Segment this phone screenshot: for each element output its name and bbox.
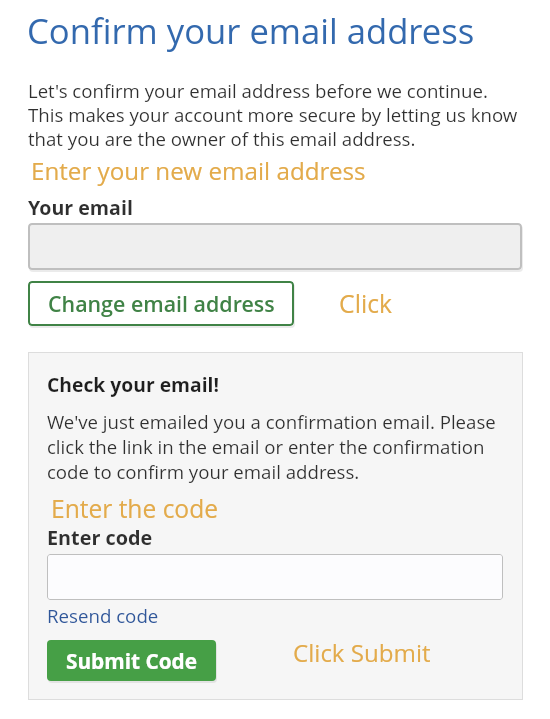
- button[interactable]: Resend code: [47, 603, 159, 628]
- staticText: Change email address: [48, 289, 275, 318]
- staticText: Your email: [28, 194, 133, 221]
- staticText: We've just emailed you a confirmation em…: [47, 409, 496, 484]
- staticText: Check your email!: [47, 371, 219, 397]
- button[interactable]: Change email address: [28, 281, 294, 326]
- button[interactable]: Submit Code: [47, 640, 216, 681]
- staticText: Let's confirm your email address before …: [28, 78, 518, 151]
- staticText: Click Submit: [293, 636, 431, 669]
- staticText: Submit Code: [66, 647, 198, 675]
- staticText: Click: [339, 286, 393, 320]
- button[interactable]: Your email input field: [28, 223, 522, 270]
- staticText: Confirm your email address: [27, 7, 475, 54]
- button[interactable]: Enter code input field: [47, 554, 503, 600]
- staticText: Enter your new email address: [31, 154, 366, 187]
- staticText: Enter the code: [51, 492, 219, 526]
- staticText: Enter code: [47, 524, 153, 551]
